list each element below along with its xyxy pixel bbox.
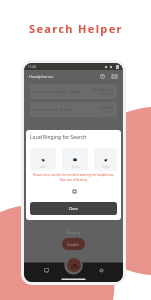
staticText: Please not to use this Service while wea…: [30, 173, 117, 182]
staticText: Ringing: [67, 230, 80, 235]
staticText: 11:44: [28, 65, 36, 69]
button[interactable]: Inbox: [109, 71, 119, 81]
staticText: Disable: [67, 242, 80, 247]
button[interactable]: Search: [67, 258, 81, 272]
button[interactable]: Devices: [40, 264, 52, 276]
staticText: AirPods Pro 1: [93, 88, 114, 92]
staticText: AirPods 2: [99, 106, 114, 110]
button[interactable]: Close: [30, 202, 117, 215]
staticText: Left: [40, 165, 46, 169]
button[interactable]: Do not show again: [71, 188, 77, 194]
staticText: Close: [69, 206, 78, 211]
button[interactable]: Both: [62, 148, 88, 171]
staticText: AirPods Pro/AirPod XC - Flexible: [33, 90, 81, 94]
button[interactable]: Right: [94, 148, 117, 171]
button[interactable]: History: [97, 71, 107, 81]
staticText: Both: [72, 165, 79, 169]
staticText: Loud Ringing for Search: [30, 134, 87, 141]
button[interactable]: Disable: [62, 238, 85, 250]
staticText: AirPods Android - Red Mp: [33, 108, 72, 112]
staticText: Headphones: [29, 74, 53, 79]
button[interactable]: Settings: [95, 264, 107, 276]
staticText: Search Helper: [29, 21, 123, 36]
staticText: Right: [102, 165, 110, 169]
button[interactable]: Left: [30, 148, 56, 171]
